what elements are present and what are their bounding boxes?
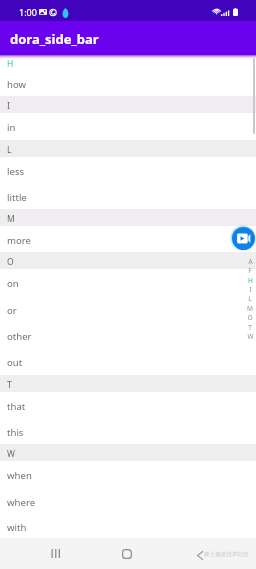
button[interactable]: this [0,418,256,444]
staticText: little [7,191,27,204]
button[interactable]: O [243,312,256,322]
button[interactable]: how [0,70,256,96]
button[interactable]: M [0,209,256,226]
staticText: or [7,304,17,317]
staticText: M [247,304,253,313]
staticText: I [7,100,10,112]
button[interactable]: with [0,514,256,538]
staticText: L [7,144,12,156]
button[interactable]: New video [230,225,256,251]
staticText: A [248,257,253,266]
staticText: H [7,58,14,70]
staticText: other [7,330,32,343]
staticText: O [7,256,14,268]
button[interactable]: I [0,96,256,113]
button[interactable]: L [0,140,256,157]
staticText: I [249,285,252,294]
staticText: 1:00 [19,6,37,18]
button[interactable]: that [0,392,256,418]
staticText: more [7,234,31,247]
button[interactable]: more [0,226,256,252]
staticText: that [7,400,26,413]
staticText: M [7,213,15,225]
staticText: dora_side_bar [10,30,99,48]
button[interactable]: less [0,157,256,183]
button[interactable]: other [0,322,256,348]
button[interactable]: F [243,265,256,275]
button[interactable]: Home [113,540,140,567]
button[interactable]: L [243,293,256,303]
button[interactable]: T [243,322,256,332]
staticText: O [247,313,253,322]
staticText: L [248,294,252,303]
button[interactable]: or [0,296,256,322]
button[interactable]: where [0,488,256,514]
staticText: how [7,78,27,91]
staticText: this [7,426,24,439]
staticText: on [7,277,19,290]
button[interactable]: W [243,331,256,341]
staticText: less [7,165,25,178]
button[interactable]: H [243,275,256,285]
staticText: 稀土掘金技术社区 [204,551,249,558]
button[interactable]: out [0,348,256,375]
button[interactable]: little [0,183,256,209]
button[interactable]: I [243,284,256,294]
staticText: F [248,266,252,275]
button[interactable]: Back [186,542,213,569]
staticText: W [247,332,254,341]
staticText: when [7,469,32,482]
button[interactable]: W [0,444,256,461]
staticText: W [7,448,15,460]
button[interactable]: Recent apps [42,540,69,567]
button[interactable]: in [0,113,256,140]
button[interactable]: on [0,269,256,296]
button[interactable]: H [0,55,256,72]
staticText: H [248,276,253,285]
button[interactable]: when [0,461,256,488]
staticText: T [248,323,252,332]
staticText: with [7,521,27,534]
button[interactable]: A [243,256,256,266]
button[interactable]: M [243,303,256,313]
button[interactable]: T [0,375,256,392]
staticText: out [7,356,23,369]
staticText: T [7,379,12,391]
staticText: where [7,496,36,509]
staticText: in [7,121,16,134]
button[interactable]: O [0,252,256,269]
